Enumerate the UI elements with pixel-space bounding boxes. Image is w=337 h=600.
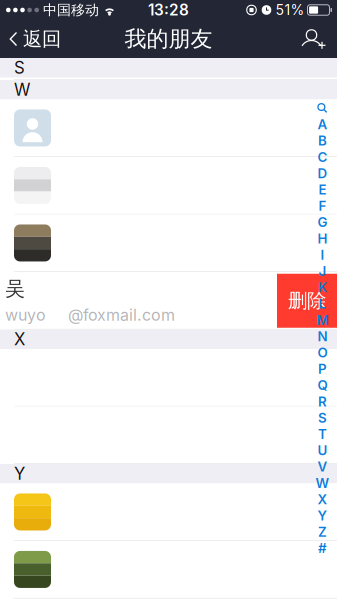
staticText: 中国移动 <box>43 1 99 19</box>
button[interactable]: T <box>315 426 330 442</box>
staticText: S <box>14 58 25 78</box>
staticText: P <box>318 361 327 377</box>
button[interactable] <box>0 157 337 214</box>
button[interactable]: W <box>315 475 330 491</box>
button[interactable]: M <box>315 312 330 328</box>
button[interactable] <box>0 99 337 157</box>
button[interactable] <box>0 483 337 541</box>
button[interactable]: K <box>315 279 330 296</box>
staticText: wuyo <box>5 305 46 325</box>
staticText: N <box>317 328 327 344</box>
staticText: A <box>317 116 327 132</box>
staticText: K <box>318 279 327 295</box>
staticText: Z <box>318 524 327 540</box>
staticText: Q <box>317 377 327 393</box>
staticText: U <box>317 442 327 458</box>
staticText: D <box>317 165 327 181</box>
staticText: 51% <box>275 1 304 18</box>
button[interactable]: C <box>315 149 330 165</box>
button[interactable] <box>0 541 337 598</box>
button[interactable] <box>0 22 337 80</box>
staticText: 删除 <box>288 289 326 313</box>
staticText: 我的朋友 <box>124 25 212 53</box>
staticText: T <box>318 426 327 442</box>
staticText: O <box>317 345 327 361</box>
staticText: E <box>318 182 326 198</box>
staticText: 13:28 <box>148 1 189 19</box>
button[interactable]: Add Friend <box>292 20 337 58</box>
staticText: I <box>320 247 324 263</box>
button[interactable]: Search <box>315 100 330 116</box>
staticText: L <box>318 296 326 312</box>
button[interactable]: Z <box>315 524 330 540</box>
button[interactable]: O <box>315 344 330 361</box>
button[interactable]: 删除 <box>277 274 337 328</box>
button[interactable]: D <box>315 165 330 181</box>
button[interactable]: Y <box>315 507 330 524</box>
staticText: W <box>14 80 30 100</box>
button[interactable] <box>0 406 337 464</box>
button[interactable]: J <box>315 263 330 279</box>
staticText: G <box>317 214 327 230</box>
button[interactable]: U <box>315 442 330 459</box>
button[interactable]: # <box>315 540 330 556</box>
staticText: M <box>316 312 328 328</box>
button[interactable]: Q <box>315 377 330 393</box>
staticText: R <box>318 393 327 410</box>
staticText: C <box>317 149 327 165</box>
button[interactable]: V <box>315 459 330 475</box>
button[interactable]: X <box>315 491 330 507</box>
staticText: V <box>317 459 327 475</box>
staticText: W <box>315 475 329 491</box>
button[interactable]: B <box>315 133 330 149</box>
staticText: X <box>14 329 25 349</box>
button[interactable]: R <box>315 393 330 410</box>
button[interactable]: S <box>315 410 330 426</box>
button[interactable]: 返回 <box>0 20 71 58</box>
button[interactable] <box>0 214 337 272</box>
staticText: Y <box>14 464 25 484</box>
button[interactable]: F <box>315 198 330 214</box>
staticText: J <box>318 263 326 279</box>
staticText: 返回 <box>23 27 61 51</box>
staticText: X <box>317 491 327 507</box>
button[interactable]: E <box>315 181 330 198</box>
staticText: 吴 <box>5 276 25 301</box>
button[interactable]: P <box>315 361 330 377</box>
button[interactable]: L <box>315 296 330 312</box>
button[interactable]: H <box>315 230 330 247</box>
button[interactable]: A <box>315 116 330 133</box>
button[interactable]: N <box>315 328 330 344</box>
staticText: H <box>317 230 327 247</box>
button[interactable]: G <box>315 214 330 230</box>
staticText: B <box>318 133 327 149</box>
button[interactable]: I <box>315 247 330 263</box>
staticText: S <box>318 410 327 426</box>
staticText: # <box>318 540 327 556</box>
staticText: @foxmail.com <box>68 305 175 325</box>
staticText: Y <box>317 508 327 524</box>
staticText: F <box>318 198 326 214</box>
button[interactable] <box>0 349 337 406</box>
